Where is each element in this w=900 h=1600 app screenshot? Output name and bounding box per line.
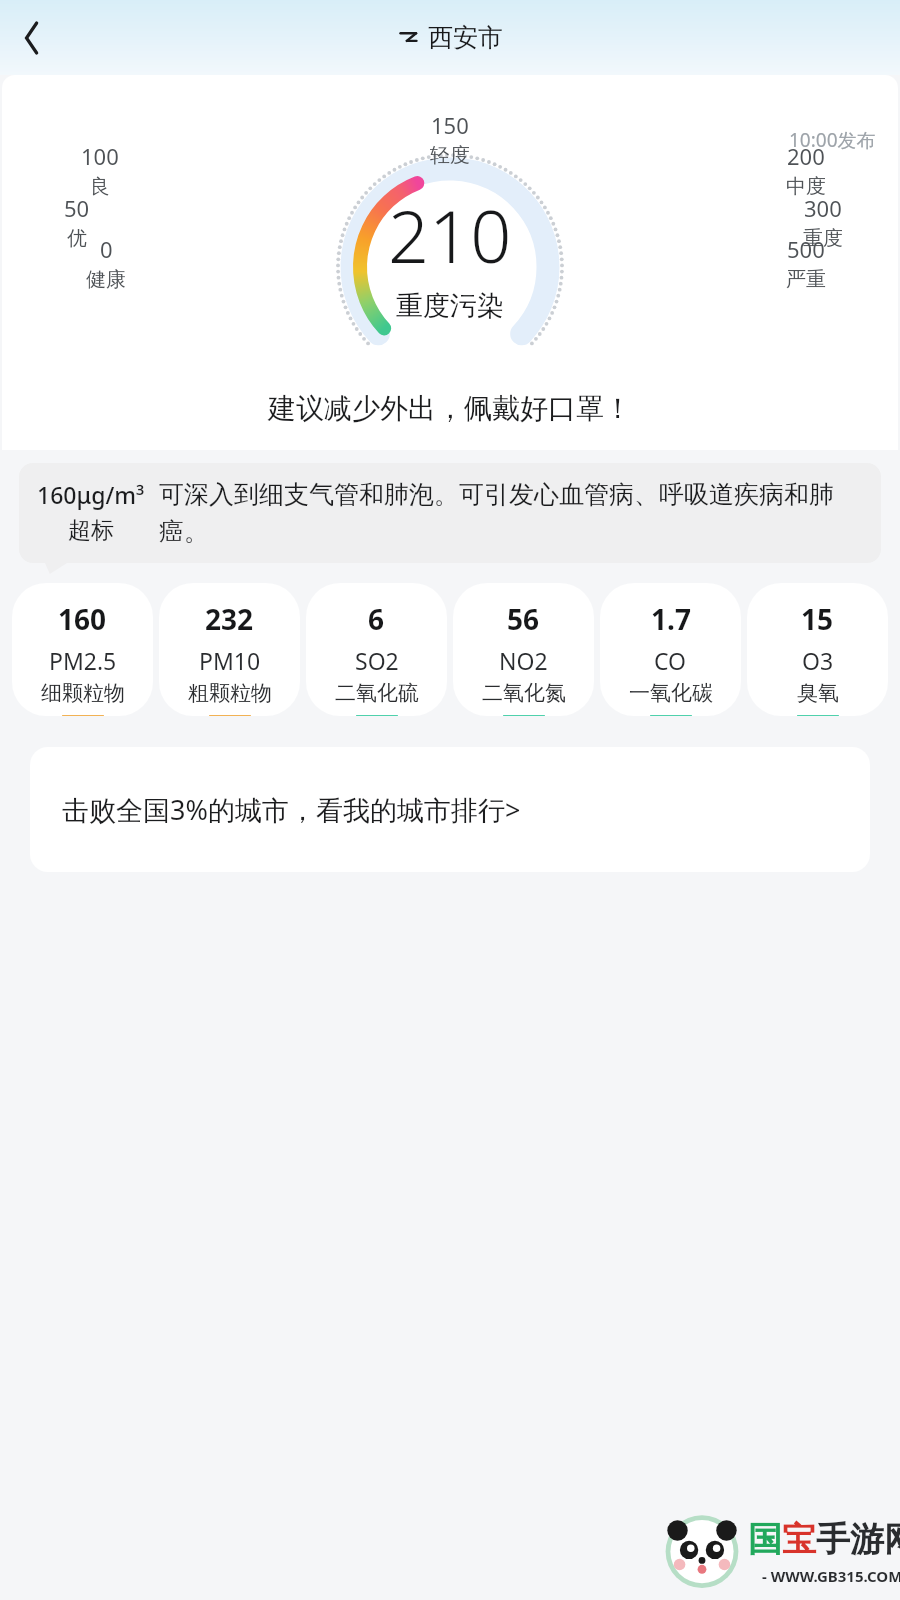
- staticText: 200: [787, 141, 825, 171]
- button[interactable]: 15: [747, 583, 888, 716]
- staticText: 15: [801, 600, 834, 638]
- staticText: 细颗粒物: [41, 680, 125, 706]
- staticText: 宝: [782, 1518, 816, 1561]
- button[interactable]: 1.7: [600, 583, 741, 716]
- staticText: 160μg/m³: [37, 479, 145, 510]
- staticText: 超标: [68, 516, 114, 545]
- staticText: 轻度: [430, 143, 470, 168]
- staticText: 6: [368, 600, 385, 638]
- staticText: 粗颗粒物: [188, 680, 272, 706]
- staticText: NO2: [499, 645, 548, 676]
- button[interactable]: 6: [306, 583, 447, 716]
- staticText: 150: [431, 110, 469, 140]
- button[interactable]: 160: [12, 583, 153, 716]
- staticText: 56: [507, 600, 540, 638]
- staticText: 0: [100, 234, 113, 264]
- staticText: PM10: [199, 645, 261, 676]
- staticText: 臭氧: [797, 680, 839, 706]
- staticText: 100: [81, 141, 119, 171]
- button[interactable]: 击败全国3%的城市，看我的城市排行>: [30, 747, 870, 872]
- staticText: 160: [58, 600, 107, 638]
- staticText: 10:00发布: [789, 127, 876, 153]
- staticText: 建议减少外出，佩戴好口罩！: [268, 391, 632, 426]
- staticText: 手游网: [816, 1518, 900, 1561]
- button[interactable]: 160μg/m³: [19, 463, 881, 563]
- staticText: 击败全国3%的城市，看我的城市排行>: [62, 791, 521, 828]
- staticText: 重度污染: [396, 289, 504, 323]
- staticText: 210: [388, 186, 512, 284]
- staticText: 二氧化氮: [482, 680, 566, 706]
- staticText: CO: [654, 645, 687, 676]
- staticText: 二氧化硫: [335, 680, 419, 706]
- staticText: 优: [67, 226, 87, 251]
- button[interactable]: 232: [159, 583, 300, 716]
- staticText: - WWW.GB315.COM -: [762, 1566, 900, 1586]
- staticText: 500: [787, 234, 825, 264]
- staticText: O3: [802, 645, 834, 676]
- staticText: 中度: [786, 174, 826, 199]
- staticText: 232: [205, 600, 254, 638]
- staticText: 可深入到细支气管和肺泡。可引发心血管病、呼吸道疾病和肺癌。: [159, 479, 865, 547]
- staticText: PM2.5: [49, 645, 117, 676]
- staticText: 一氧化碳: [629, 680, 713, 706]
- staticText: 严重: [786, 267, 826, 292]
- staticText: 300: [804, 193, 842, 223]
- button[interactable]: 56: [453, 583, 594, 716]
- staticText: 良: [90, 174, 110, 199]
- staticText: SO2: [355, 645, 399, 676]
- staticText: 50: [64, 193, 90, 223]
- staticText: 国: [748, 1518, 782, 1561]
- staticText: 1.7: [651, 600, 691, 638]
- staticText: 健康: [86, 267, 126, 292]
- staticText: 西安市: [428, 22, 503, 53]
- button[interactable]: Back: [10, 16, 54, 60]
- staticText: 重度: [803, 226, 843, 251]
